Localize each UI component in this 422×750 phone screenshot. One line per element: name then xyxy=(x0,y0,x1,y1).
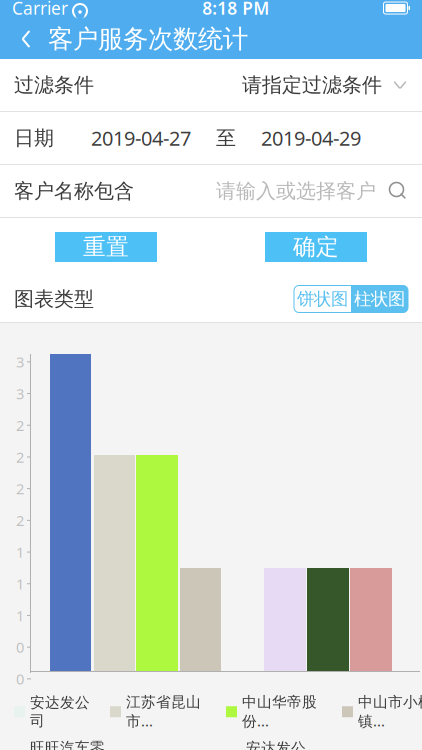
staticText: 2019-04-27 xyxy=(91,125,191,151)
staticText: 1 xyxy=(16,606,24,625)
staticText: 饼状图 xyxy=(297,288,348,310)
button[interactable]: 过滤条件 xyxy=(0,59,422,112)
staticText: 安达发公司 xyxy=(246,739,306,750)
staticText: 客户名称包含 xyxy=(14,179,134,203)
button[interactable]: 客户名称包含 xyxy=(0,165,422,218)
staticText: 中山市小榄镇... xyxy=(358,693,422,730)
staticText: 安达发公司 xyxy=(30,694,90,730)
staticText: 重置 xyxy=(83,233,129,261)
staticText: 请输入或选择客户 xyxy=(216,179,376,203)
staticText: 江苏省昆山市... xyxy=(126,693,201,730)
staticText: 柱状图 xyxy=(354,288,405,310)
staticText xyxy=(67,0,73,23)
staticText: 2 xyxy=(16,447,24,467)
staticText: 至 xyxy=(216,126,236,150)
staticText: 中山华帝股份... xyxy=(242,693,317,730)
staticText: 0 xyxy=(16,669,24,689)
button[interactable]: 柱状图 xyxy=(351,285,408,312)
staticText: 3 xyxy=(16,352,24,372)
staticText: 确定 xyxy=(293,233,339,261)
staticText: 请指定过滤条件 xyxy=(242,73,382,97)
staticText: 旺旺汽车零部... xyxy=(30,738,105,750)
button[interactable]: 2019-04-29 xyxy=(246,114,376,162)
staticText: 0 xyxy=(16,637,24,657)
staticText: 1 xyxy=(16,574,24,593)
staticText: 过滤条件 xyxy=(14,73,94,97)
staticText: 2 xyxy=(16,415,24,435)
button[interactable]: 饼状图 xyxy=(294,285,351,312)
staticText: 1 xyxy=(16,542,24,562)
staticText: 客户服务次数统计 xyxy=(48,23,248,54)
staticText: 3 xyxy=(16,384,24,403)
staticText: 2019-04-29 xyxy=(261,125,361,151)
button[interactable]: 确定 xyxy=(265,232,367,262)
staticText: 2 xyxy=(16,479,24,498)
staticText: 8:18 PM xyxy=(202,0,269,19)
button[interactable]: 2019-04-27 xyxy=(76,114,206,162)
button[interactable]: 重置 xyxy=(55,232,157,262)
staticText: Carrier xyxy=(12,0,68,19)
button[interactable]: 返回 xyxy=(4,19,48,59)
staticText: 图表类型 xyxy=(14,287,94,311)
staticText: 2 xyxy=(16,511,24,530)
staticText: 日期 xyxy=(14,126,54,150)
